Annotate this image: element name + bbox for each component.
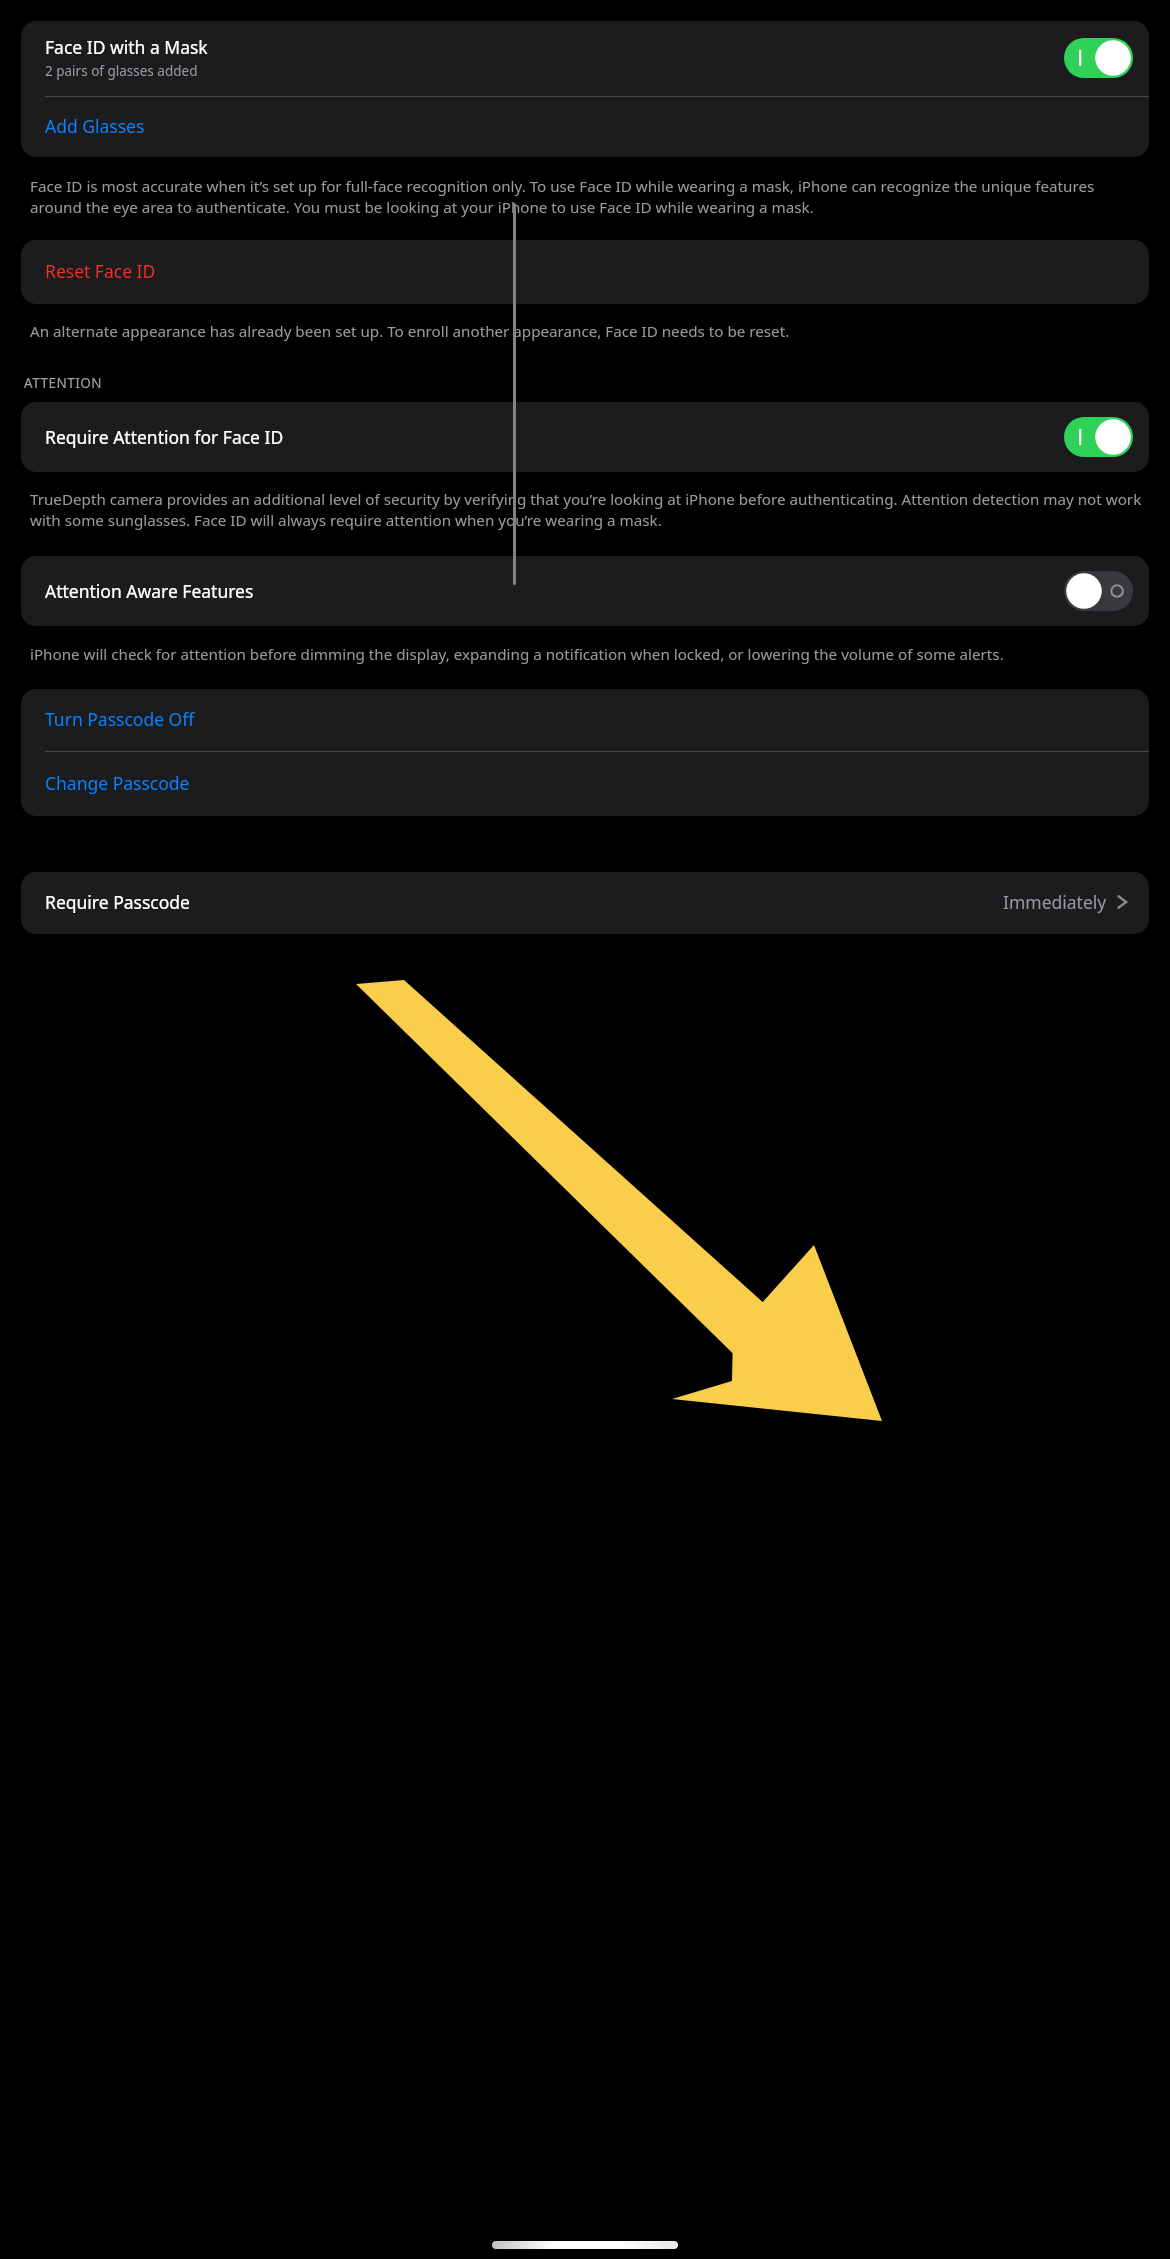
button[interactable]: Require Passcode [21,872,1149,934]
staticText: Reset Face ID [45,259,156,283]
staticText: ATTENTION [24,374,103,392]
staticText: TrueDepth camera provides an additional … [30,489,1144,531]
button[interactable]: Reset Face ID [21,240,1149,304]
staticText: 2 pairs of glasses added [45,62,198,80]
staticText: An alternate appearance has already been… [30,321,790,342]
staticText: Face ID is most accurate when it’s set u… [30,176,1144,218]
button[interactable]: Require Attention for Face ID [21,402,1149,472]
staticText: Require Attention for Face ID [45,425,284,449]
staticText: Turn Passcode Off [45,707,195,731]
button[interactable]: Toggle on [1064,417,1133,457]
staticText: Face ID with a Mask [45,35,208,59]
staticText: iPhone will check for attention before d… [30,644,1004,665]
button[interactable]: Toggle on [1064,38,1133,78]
button[interactable]: Add Glasses [21,97,1149,157]
staticText: Change Passcode [45,771,190,795]
button[interactable]: Toggle off [1064,571,1133,611]
staticText: Add Glasses [45,114,145,138]
button[interactable]: Attention Aware Features [21,556,1149,626]
staticText: Require Passcode [45,890,190,914]
staticText: Attention Aware Features [45,579,254,603]
button[interactable]: Turn Passcode Off [21,689,1149,751]
button[interactable]: Change Passcode [21,752,1149,816]
staticText: Immediately [1003,890,1107,914]
button[interactable]: Face ID with a Mask [21,21,1149,96]
